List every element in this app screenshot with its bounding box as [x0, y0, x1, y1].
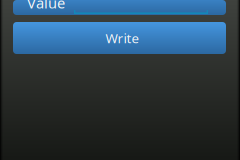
button[interactable]: Value [13, 0, 226, 15]
button[interactable]: Write [13, 22, 226, 54]
staticText: Value [27, 0, 65, 12]
staticText: Write [105, 29, 139, 47]
